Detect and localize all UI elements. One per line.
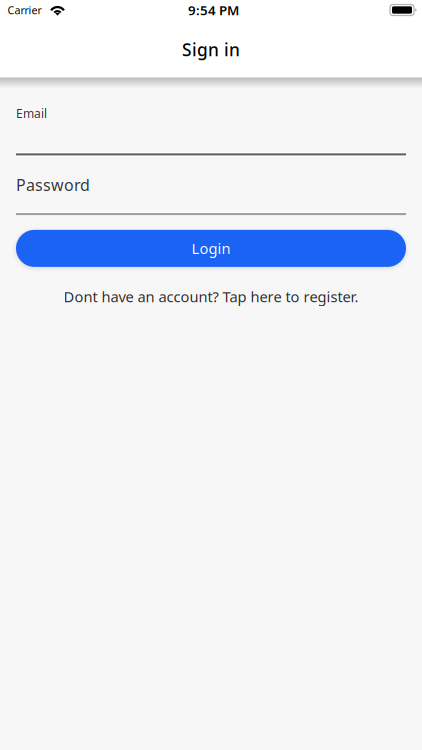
staticText: Sign in [182, 38, 240, 61]
button[interactable]: Login [16, 230, 406, 267]
staticText: Dont have an account? Tap here to regist… [63, 287, 358, 306]
staticText: Login [191, 239, 230, 258]
staticText: Password [16, 174, 90, 195]
staticText: 9:54 PM [188, 1, 239, 19]
staticText: Email [16, 105, 47, 121]
button[interactable]: Dont have an account? Tap here to regist… [16, 287, 406, 306]
staticText: Carrier [7, 3, 41, 17]
